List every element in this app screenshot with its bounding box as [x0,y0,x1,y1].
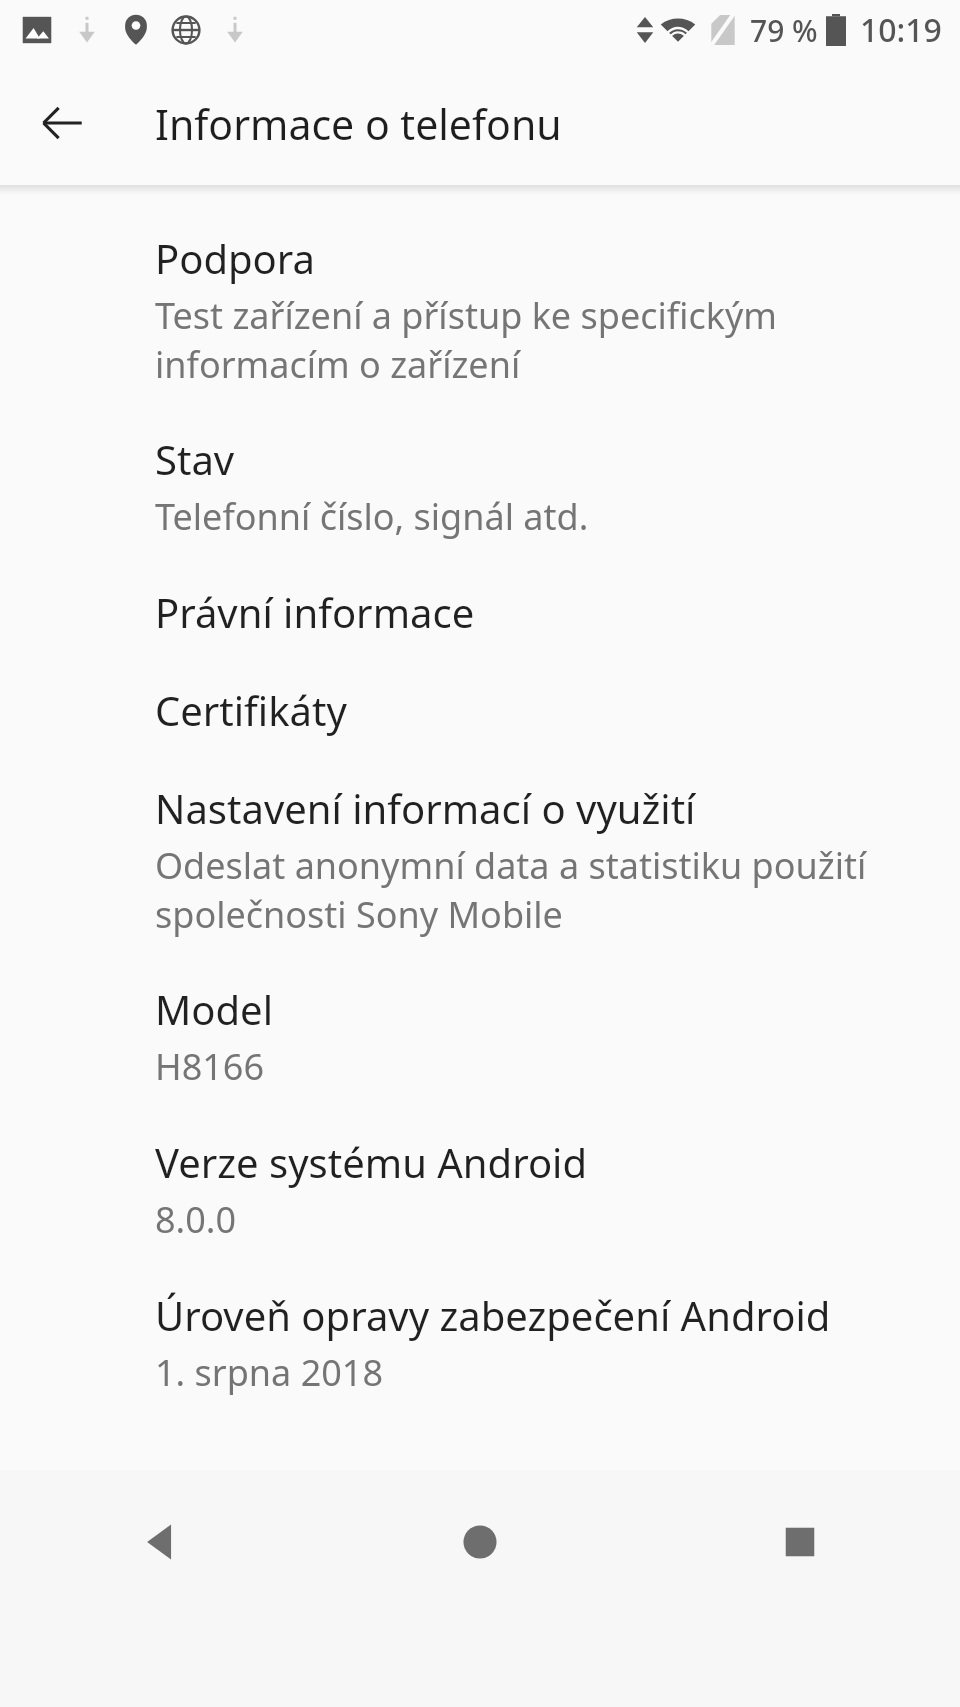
button[interactable]: Model [0,960,960,1113]
staticText: Nastavení informací o využití [155,781,696,835]
button[interactable]: Home [320,1492,640,1592]
staticText: Test zařízení a přístup ke specifickým i… [155,291,900,388]
staticText: Verze systému Android [155,1135,587,1189]
staticText: 10:19 [860,8,942,52]
staticText: 1. srpna 2018 [155,1348,384,1397]
staticText: Podpora [155,231,315,285]
staticText: 79 % [750,10,818,51]
button[interactable]: Certifikáty [0,661,960,759]
staticText: Model [155,982,273,1036]
button[interactable]: Verze systému Android [0,1113,960,1266]
button[interactable]: Recents [640,1492,960,1592]
staticText: Odeslat anonymní data a statistiku použi… [155,841,900,938]
staticText: Úroveň opravy zabezpečení Android [155,1288,831,1342]
button[interactable]: Nastavení informací o využití [0,759,960,960]
staticText: Stav [155,432,235,486]
button[interactable]: Podpora [0,209,960,410]
staticText: Právní informace [155,585,475,639]
staticText: 8.0.0 [155,1195,237,1244]
staticText: H8166 [155,1042,265,1091]
staticText: Informace o telefonu [155,96,562,152]
button[interactable]: Úroveň opravy zabezpečení Android [0,1266,960,1419]
button[interactable]: Stav [0,410,960,563]
staticText: Telefonní číslo, signál atd. [155,492,589,541]
button[interactable]: Právní informace [0,563,960,661]
button[interactable]: Back [0,1492,320,1592]
staticText: Certifikáty [155,683,347,737]
button[interactable]: Back [22,83,102,163]
